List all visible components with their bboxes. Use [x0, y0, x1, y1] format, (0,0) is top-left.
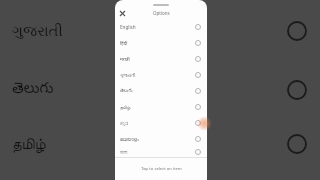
staticText: हिंदी	[120, 40, 194, 46]
staticText: English	[120, 24, 194, 30]
staticText: മലയാളം	[120, 137, 194, 142]
staticText: বাংলা	[120, 150, 194, 155]
button[interactable]: English	[115, 19, 207, 35]
button[interactable]: Select language	[284, 131, 310, 157]
button[interactable]: தமிழ்	[12, 131, 100, 157]
staticText: Options	[153, 10, 170, 16]
button[interactable]: தமிழ்	[115, 99, 207, 115]
staticText: ગુજરાતી	[120, 73, 194, 78]
button[interactable]: Tap to select an item	[115, 158, 207, 180]
staticText: తెలుగు	[120, 88, 194, 94]
button[interactable]: ગુજરાતી	[12, 18, 100, 44]
button[interactable]: Select language	[284, 77, 310, 103]
staticText: Tap to select an item	[141, 166, 182, 172]
staticText: தமிழ்	[12, 137, 46, 152]
button[interactable]: हिंदी	[115, 35, 207, 51]
staticText: தமிழ்	[120, 105, 194, 110]
button[interactable]: Select language	[284, 18, 310, 44]
button[interactable]: मराठी	[115, 51, 207, 67]
button[interactable]: മലയാളം	[115, 131, 207, 147]
staticText: मराठी	[120, 56, 194, 62]
staticText: ગુજરાતી	[12, 24, 63, 39]
button[interactable]: ગુજરાતી	[115, 67, 207, 83]
button[interactable]: বাংলা	[115, 147, 207, 157]
button[interactable]: Close	[117, 8, 128, 19]
staticText: ಕನ್ನಡ	[120, 121, 194, 126]
button[interactable]: ಕನ್ನಡ	[115, 115, 207, 131]
button[interactable]: తెలుగు	[12, 77, 100, 103]
button[interactable]: తెలుగు	[115, 83, 207, 99]
staticText: తెలుగు	[12, 80, 54, 100]
